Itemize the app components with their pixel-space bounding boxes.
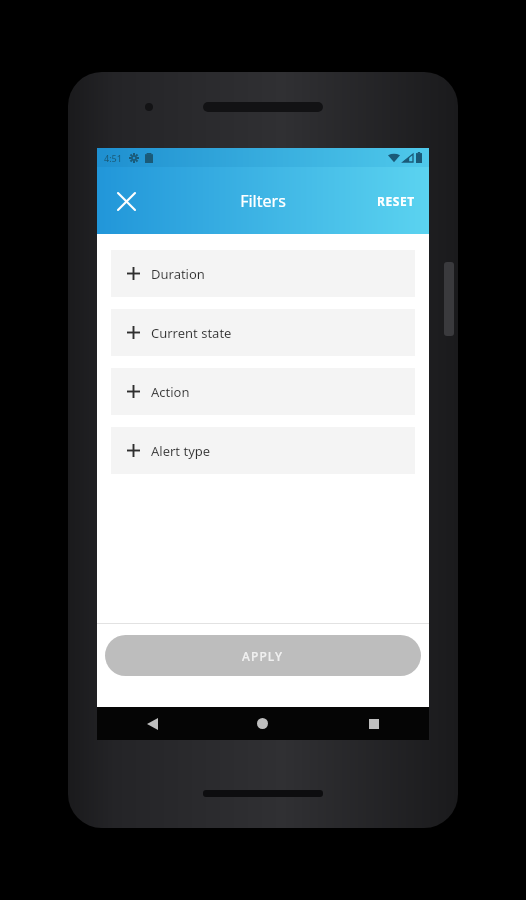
staticText: Alert type: [151, 442, 211, 460]
staticText: 4:51: [104, 152, 122, 164]
staticText: Action: [151, 383, 190, 401]
staticText: RESET: [377, 193, 415, 209]
button[interactable]: Recent apps: [318, 707, 429, 740]
button[interactable]: Action: [111, 368, 415, 415]
button[interactable]: Back: [97, 707, 207, 740]
staticText: Duration: [151, 265, 205, 283]
button[interactable]: Current state: [111, 309, 415, 356]
button[interactable]: Close: [105, 180, 147, 222]
button[interactable]: Home: [207, 707, 318, 740]
button[interactable]: APPLY: [105, 635, 421, 676]
button[interactable]: Alert type: [111, 427, 415, 474]
button[interactable]: Duration: [111, 250, 415, 297]
button[interactable]: RESET: [369, 185, 423, 217]
staticText: APPLY: [242, 648, 284, 664]
staticText: Current state: [151, 324, 232, 342]
staticText: Filters: [240, 190, 286, 212]
